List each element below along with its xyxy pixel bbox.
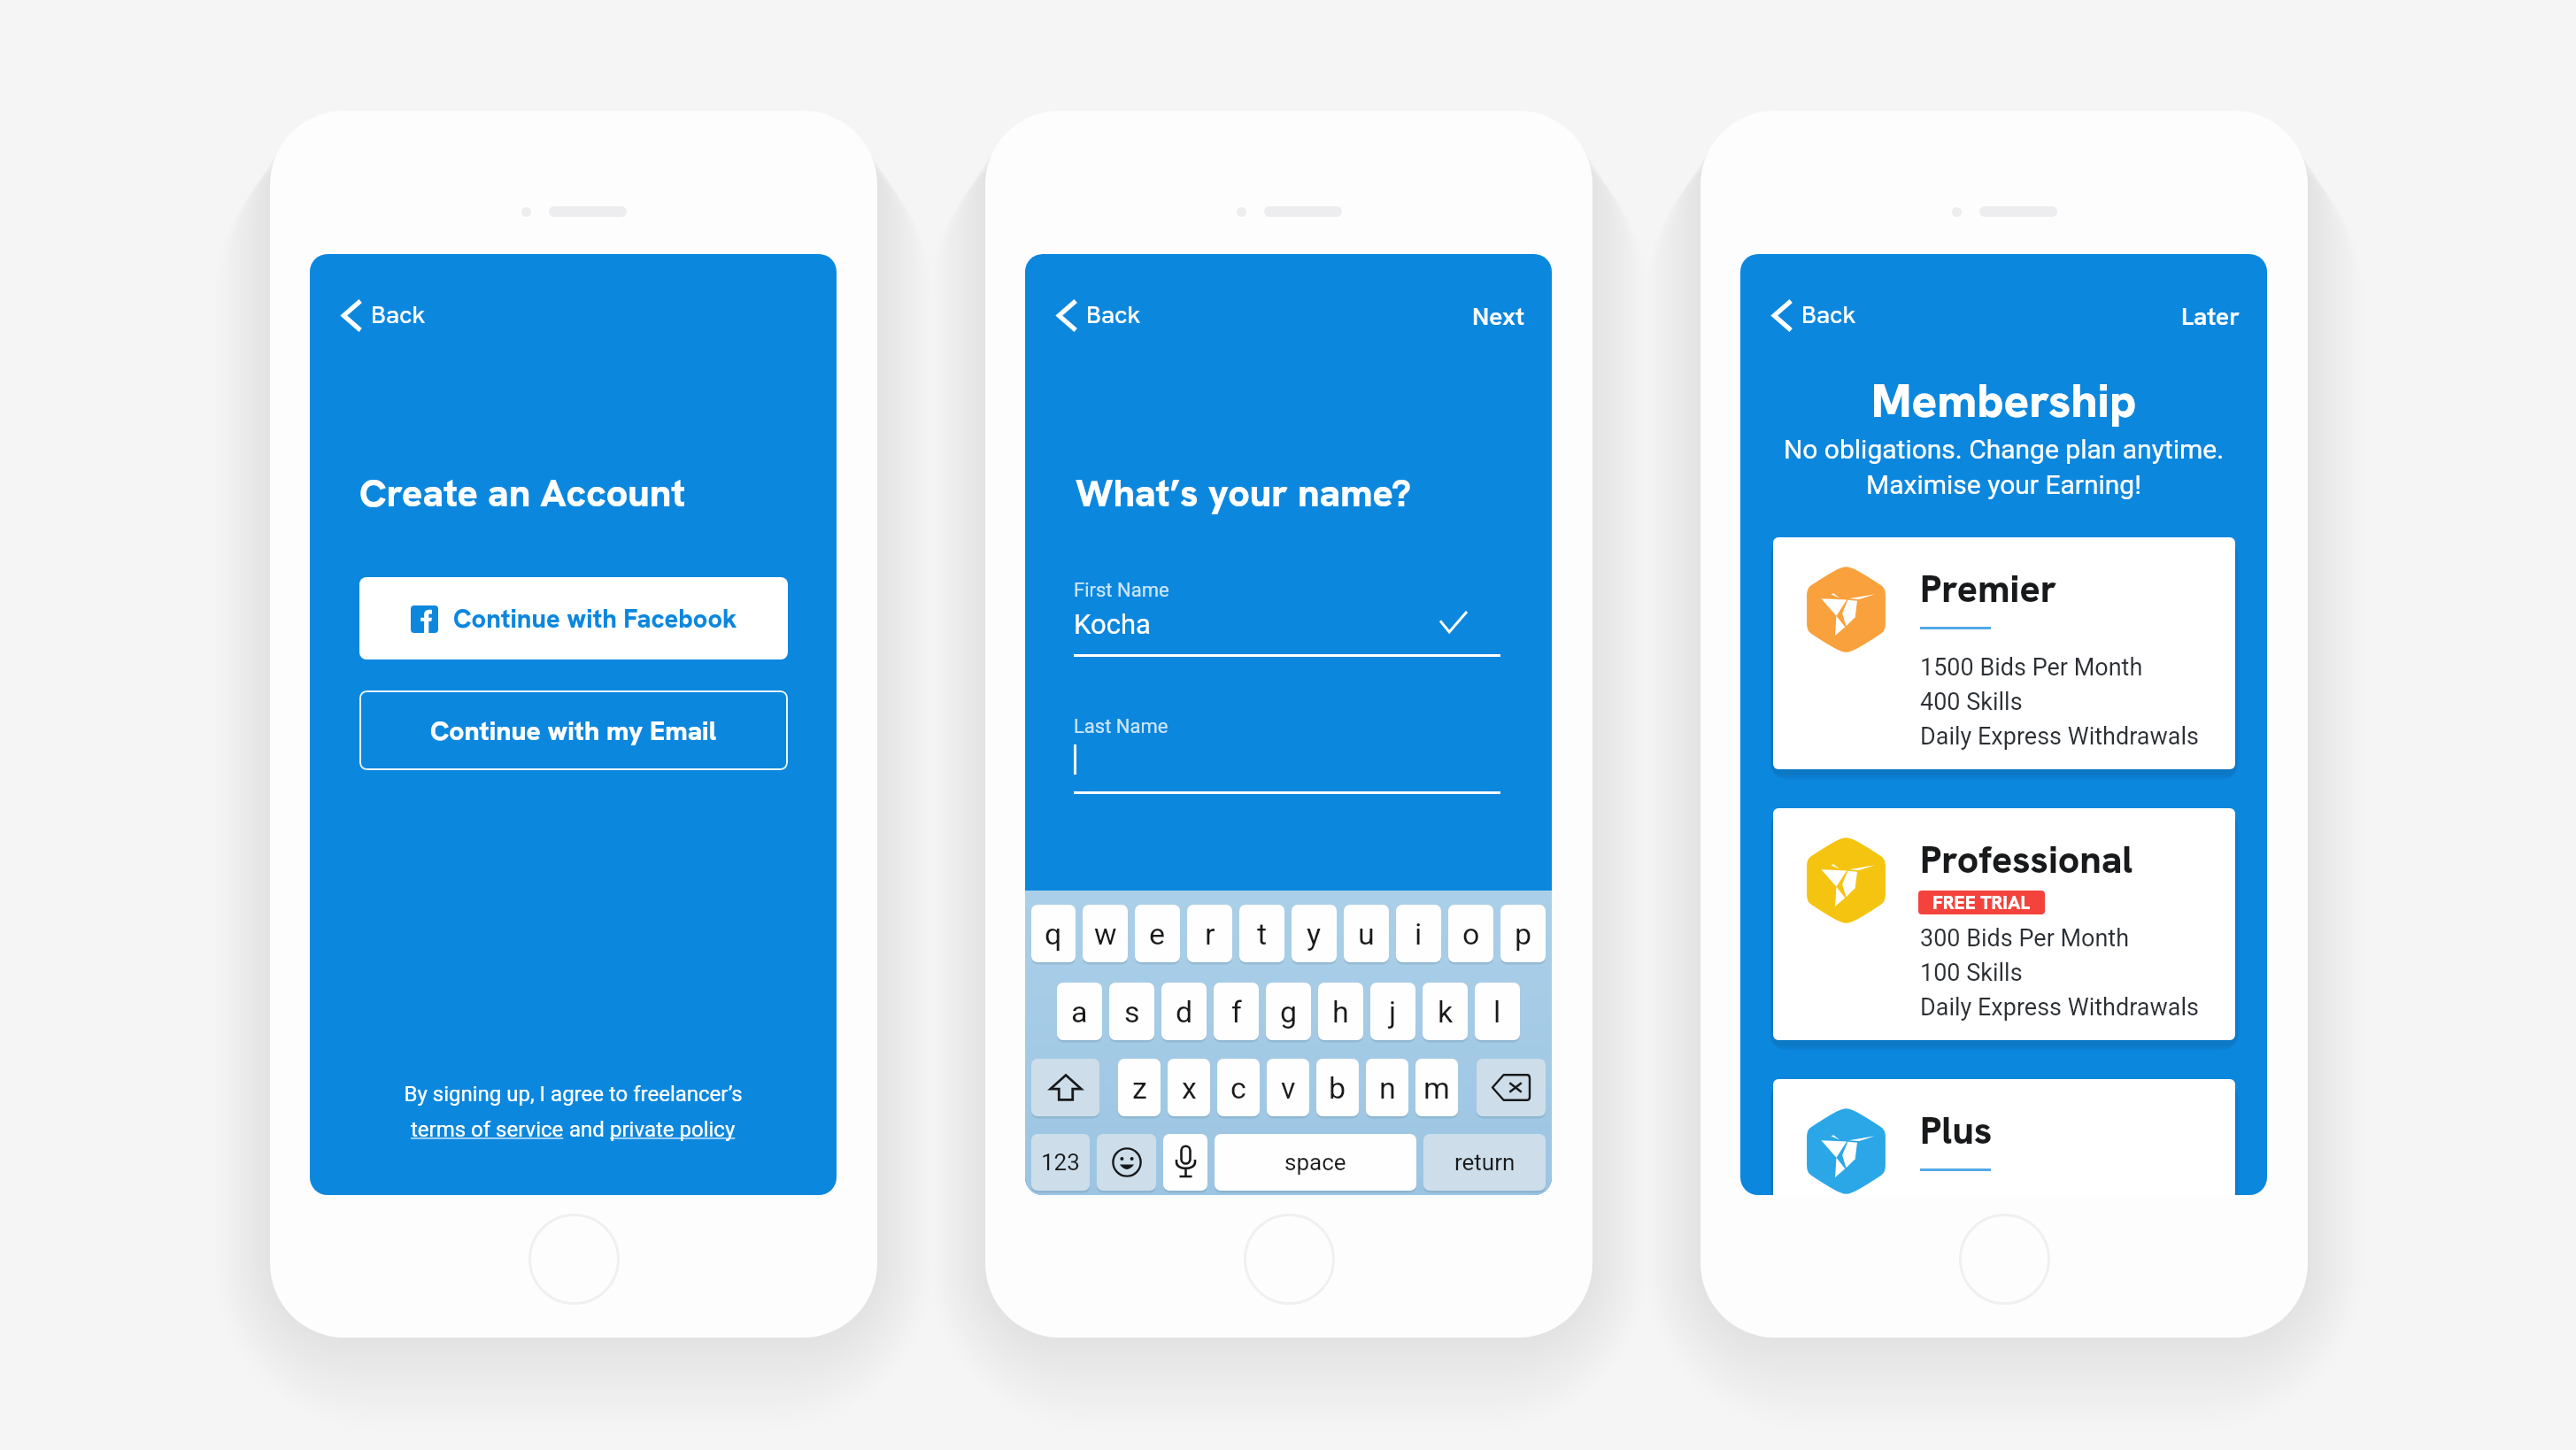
button[interactable]: Back xyxy=(332,290,436,340)
button[interactable]: return xyxy=(1423,1134,1546,1191)
button[interactable]: Back xyxy=(1047,290,1152,340)
button[interactable]: f xyxy=(1214,983,1259,1040)
staticText: 100 Skills xyxy=(1920,959,2023,987)
button[interactable]: s xyxy=(1109,983,1154,1040)
button[interactable]: a xyxy=(1057,983,1102,1040)
button[interactable]: r xyxy=(1187,905,1232,962)
staticText: w xyxy=(1094,916,1117,952)
staticText: FREE TRIAL xyxy=(1932,891,2031,914)
staticText: return xyxy=(1454,1149,1516,1176)
button[interactable]: Dictate xyxy=(1163,1134,1207,1191)
staticText: Professional xyxy=(1920,835,2133,884)
staticText: g xyxy=(1280,994,1298,1030)
staticText: r xyxy=(1205,916,1215,952)
button[interactable]: private policy xyxy=(610,1117,736,1142)
button[interactable]: Continue with my Email xyxy=(359,690,788,770)
staticText: c xyxy=(1230,1070,1246,1106)
button[interactable]: space xyxy=(1215,1134,1416,1191)
button[interactable]: Shift xyxy=(1031,1059,1099,1116)
staticText: Last Name xyxy=(1074,715,1168,738)
staticText: e xyxy=(1149,916,1166,952)
button[interactable]: x xyxy=(1168,1059,1210,1116)
button[interactable]: Later xyxy=(2172,291,2248,341)
staticText: f xyxy=(1231,994,1242,1030)
staticText: Kocha xyxy=(1074,608,1151,640)
button[interactable]: j xyxy=(1370,983,1415,1040)
staticText: 300 Bids Per Month xyxy=(1920,924,2130,953)
staticText: Membership xyxy=(1740,370,2267,431)
staticText: j xyxy=(1389,994,1397,1030)
button[interactable]: y xyxy=(1292,905,1337,962)
staticText: b xyxy=(1329,1070,1346,1106)
staticText: Create an Account xyxy=(359,468,686,518)
button[interactable]: terms of service xyxy=(411,1117,564,1142)
button[interactable]: n xyxy=(1366,1059,1408,1116)
staticText: and xyxy=(564,1117,610,1142)
button[interactable]: p xyxy=(1500,905,1546,962)
button[interactable]: g xyxy=(1266,983,1311,1040)
button[interactable]: k xyxy=(1423,983,1468,1040)
button[interactable]: Back xyxy=(1762,290,1867,340)
staticText: Back xyxy=(371,298,426,330)
button[interactable]: d xyxy=(1161,983,1207,1040)
staticText: Back xyxy=(1801,298,1856,330)
button[interactable]: m xyxy=(1415,1059,1458,1116)
staticText: p xyxy=(1515,916,1532,952)
button[interactable]: o xyxy=(1448,905,1493,962)
button[interactable]: e xyxy=(1135,905,1180,962)
staticText: q xyxy=(1045,916,1062,952)
staticText: v xyxy=(1281,1070,1296,1106)
staticText: t xyxy=(1257,916,1268,952)
button[interactable]: Backspace xyxy=(1477,1059,1546,1116)
staticText: a xyxy=(1071,994,1088,1030)
button[interactable]: c xyxy=(1217,1059,1260,1116)
staticText: Next xyxy=(1472,300,1524,332)
button[interactable]: w xyxy=(1083,905,1128,962)
staticText: m xyxy=(1423,1070,1450,1106)
staticText: 123 xyxy=(1041,1149,1080,1176)
staticText: 400 Skills xyxy=(1920,688,2023,716)
button[interactable]: Emoji xyxy=(1097,1134,1156,1191)
staticText: 1500 Bids Per Month xyxy=(1920,653,2143,682)
button[interactable]: u xyxy=(1344,905,1389,962)
button[interactable]: Continue with Facebook xyxy=(359,577,788,659)
staticText: Continue with Facebook xyxy=(453,602,737,636)
staticText: Daily Express Withdrawals xyxy=(1920,993,2199,1022)
button[interactable]: Plus xyxy=(1773,1079,2235,1195)
staticText: By signing up, I agree to freelancer’s xyxy=(404,1082,743,1107)
button[interactable]: t xyxy=(1239,905,1284,962)
staticText: First Name xyxy=(1074,579,1169,602)
button[interactable]: 123 xyxy=(1031,1134,1090,1191)
staticText: d xyxy=(1176,994,1193,1030)
button[interactable]: l xyxy=(1475,983,1520,1040)
staticText: Plus xyxy=(1920,1106,1993,1155)
button[interactable]: b xyxy=(1316,1059,1359,1116)
button[interactable]: z xyxy=(1118,1059,1161,1116)
staticText: k xyxy=(1438,994,1454,1030)
button[interactable]: Next xyxy=(1463,291,1533,341)
staticText: s xyxy=(1124,994,1140,1030)
button[interactable]: h xyxy=(1318,983,1363,1040)
staticText: space xyxy=(1284,1149,1346,1176)
button[interactable]: v xyxy=(1267,1059,1309,1116)
button[interactable]: Professional xyxy=(1773,808,2235,1040)
staticText: Back xyxy=(1086,298,1141,330)
staticText: Premier xyxy=(1920,564,2057,613)
staticText: What’s your name? xyxy=(1076,468,1412,518)
staticText: l xyxy=(1493,994,1501,1030)
staticText: n xyxy=(1379,1070,1396,1106)
staticText: y xyxy=(1307,916,1322,952)
staticText: Daily Express Withdrawals xyxy=(1920,722,2199,751)
button[interactable]: i xyxy=(1396,905,1441,962)
button[interactable]: Premier xyxy=(1773,537,2235,769)
staticText: h xyxy=(1332,994,1349,1030)
staticText: x xyxy=(1182,1070,1197,1106)
staticText: z xyxy=(1132,1070,1147,1106)
staticText: No obligations. Change plan anytime. Max… xyxy=(1740,434,2267,500)
staticText: o xyxy=(1462,916,1480,952)
staticText: Continue with my Email xyxy=(430,713,717,748)
staticText: u xyxy=(1358,916,1375,952)
staticText: Later xyxy=(2181,300,2240,332)
staticText: i xyxy=(1415,916,1423,952)
button[interactable]: q xyxy=(1031,905,1076,962)
